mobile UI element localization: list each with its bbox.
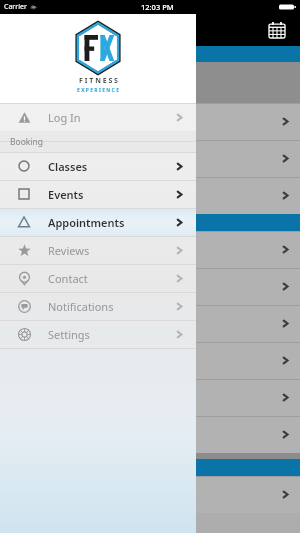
button[interactable] [0, 416, 300, 453]
staticText: Settings [48, 327, 90, 342]
button[interactable]: Settings [0, 320, 196, 348]
staticText: Log In [48, 110, 81, 125]
button[interactable] [0, 476, 300, 513]
staticText: Events [48, 187, 84, 202]
staticText: Contact [48, 271, 88, 286]
button[interactable]: Events [0, 180, 196, 208]
button[interactable] [0, 342, 300, 379]
staticText: Appointments [48, 215, 125, 230]
button[interactable] [0, 379, 300, 416]
staticText: F I T N E S S [79, 76, 118, 86]
button[interactable]: Notifications [0, 292, 196, 320]
staticText: Booking [10, 136, 44, 148]
button[interactable] [0, 177, 300, 214]
button[interactable]: Log In [0, 103, 196, 131]
button[interactable] [0, 231, 300, 268]
button[interactable] [0, 140, 300, 177]
staticText: 12:03 PM [141, 2, 174, 12]
button[interactable]: Calendar [266, 19, 288, 41]
button[interactable]: Contact [0, 264, 196, 292]
button[interactable]: Classes [0, 152, 196, 180]
button[interactable]: Reviews [0, 236, 196, 264]
staticText: Classes [48, 159, 88, 174]
staticText: E X P E R I E N C E [77, 87, 119, 94]
staticText: Reviews [48, 243, 90, 258]
button[interactable] [0, 305, 300, 342]
button[interactable] [0, 103, 300, 140]
button[interactable]: Appointments [0, 208, 196, 236]
button[interactable] [0, 268, 300, 305]
staticText: Carrier [4, 2, 27, 12]
staticText: Notifications [48, 299, 114, 314]
